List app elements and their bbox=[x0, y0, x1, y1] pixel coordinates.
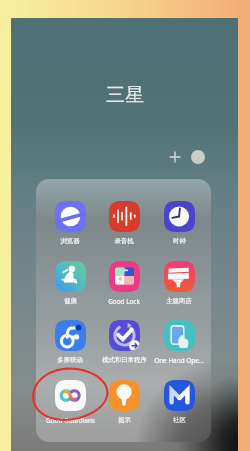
button[interactable]: 浏览器 bbox=[43, 197, 97, 249]
staticText: 浏览器 bbox=[60, 237, 80, 245]
button[interactable]: Add apps bbox=[166, 148, 184, 166]
button[interactable]: One Hand Ope… bbox=[152, 316, 206, 368]
button[interactable]: 模式和日常程序 bbox=[97, 316, 151, 368]
button[interactable]: 主题商店 bbox=[152, 257, 206, 309]
button[interactable]: 提示 bbox=[97, 376, 151, 428]
staticText: 模式和日常程序 bbox=[102, 356, 147, 364]
staticText: 三星 bbox=[106, 83, 144, 107]
button[interactable]: Good Guardians bbox=[43, 376, 97, 428]
button[interactable]: 录音机 bbox=[97, 197, 151, 249]
staticText: 录音机 bbox=[114, 237, 134, 245]
staticText: 时钟 bbox=[173, 237, 186, 245]
button[interactable]: 三星 bbox=[85, 81, 165, 109]
staticText: One Hand Ope… bbox=[154, 356, 204, 365]
button[interactable]: 多屏联动 bbox=[43, 316, 97, 368]
staticText: 社区 bbox=[173, 416, 186, 424]
button[interactable]: 时钟 bbox=[152, 197, 206, 249]
button[interactable]: 社区 bbox=[152, 376, 206, 428]
button[interactable]: Folder colour bbox=[191, 150, 205, 164]
button[interactable]: Good Lock bbox=[97, 257, 151, 309]
staticText: 提示 bbox=[118, 416, 131, 424]
staticText: 多屏联动 bbox=[57, 356, 83, 364]
staticText: 主题商店 bbox=[166, 297, 192, 305]
staticText: 健康 bbox=[64, 297, 77, 305]
staticText: Good Guardians bbox=[46, 416, 95, 425]
button[interactable]: 健康 bbox=[43, 257, 97, 309]
staticText: Good Lock bbox=[108, 297, 140, 306]
